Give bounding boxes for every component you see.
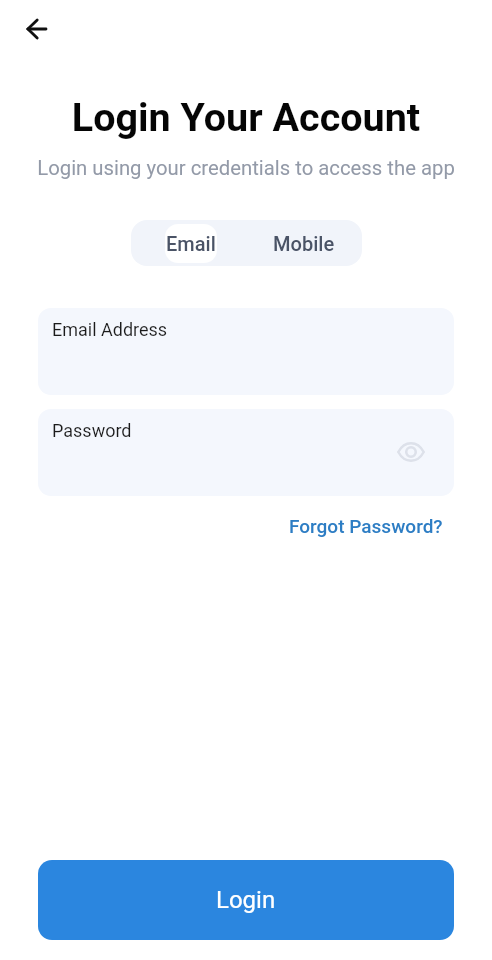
staticText: Email Address <box>52 319 168 340</box>
button[interactable]: Password <box>38 409 454 496</box>
button[interactable]: Login <box>38 860 454 940</box>
button[interactable]: Show password <box>389 430 433 474</box>
button[interactable]: Mobile <box>246 220 362 266</box>
staticText: Forgot Password? <box>289 515 443 537</box>
staticText: Password <box>52 420 132 441</box>
staticText: Email <box>166 232 216 255</box>
staticText: Login using your credentials to access t… <box>0 156 492 180</box>
button[interactable]: Email <box>131 220 246 266</box>
staticText: Mobile <box>273 232 335 255</box>
button[interactable]: Email Address <box>38 308 454 395</box>
staticText: Login <box>216 886 276 914</box>
staticText: Login Your Account <box>0 94 492 140</box>
button[interactable]: Forgot Password? <box>271 505 461 547</box>
button[interactable]: Back <box>13 5 61 53</box>
